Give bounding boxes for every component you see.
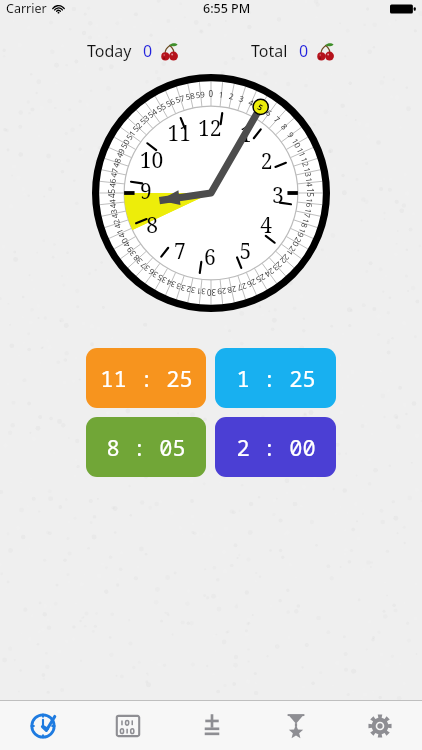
button[interactable]: 1 : 25 [215,348,336,408]
staticText: Carrier [6,0,47,17]
button[interactable]: Practice [0,701,85,750]
staticText: Today [87,40,132,62]
staticText: 0 [299,40,309,62]
button[interactable]: Awards [254,701,338,750]
button[interactable]: Digital [85,701,170,750]
other: Clock showing 8:45 [92,74,330,312]
button[interactable]: Today [87,40,179,62]
button[interactable]: Total [251,40,335,62]
button[interactable]: 8 : 05 [86,417,206,477]
staticText: 2 : 00 [236,432,316,462]
staticText: 8 : 05 [106,432,186,462]
staticText: Total [251,40,288,62]
staticText: 11 : 25 [100,363,193,393]
button[interactable]: 11 : 25 [86,348,206,408]
button[interactable]: Adjust [170,701,254,750]
button[interactable]: Settings [338,701,422,750]
staticText: 6:55 PM [203,0,251,17]
staticText: 0 [143,40,153,62]
staticText: 1 : 25 [236,363,316,393]
button[interactable]: 2 : 00 [215,417,336,477]
